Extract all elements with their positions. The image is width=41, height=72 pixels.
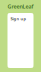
staticText: Sign up	[10, 16, 26, 21]
staticText: GreenLeaf	[7, 3, 33, 10]
